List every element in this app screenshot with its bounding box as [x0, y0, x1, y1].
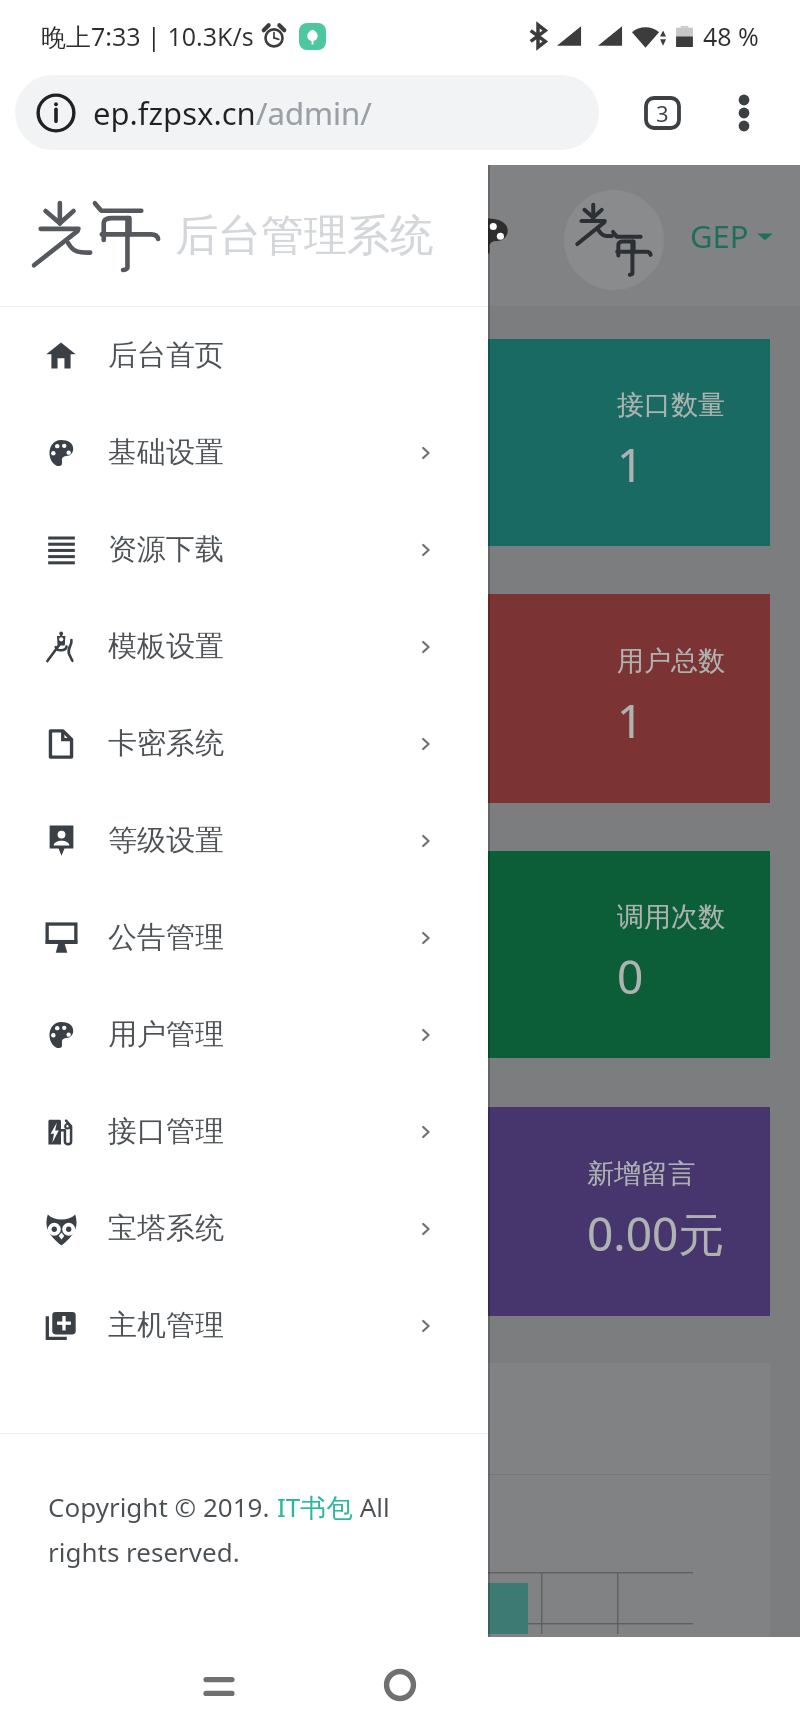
staticText: 卡密系统: [108, 725, 224, 762]
staticText: 调用次数: [617, 900, 725, 934]
button[interactable]: ep.fzpsx.cn: [15, 75, 599, 150]
staticText: 资源下载: [108, 531, 224, 568]
staticText: GEP: [690, 215, 749, 257]
staticText: 48 %: [703, 19, 759, 53]
staticText: 用户管理: [108, 1016, 224, 1053]
button[interactable]: 资源下载: [0, 501, 488, 598]
staticText: 公告管理: [108, 919, 224, 956]
button[interactable]: More options: [716, 85, 772, 141]
staticText: 新增留言: [587, 1157, 695, 1191]
button[interactable]: 宝塔系统: [0, 1180, 488, 1277]
button[interactable]: 接口数量: [18, 339, 770, 546]
button[interactable]: 用户总数: [18, 594, 770, 803]
staticText: ep.fzpsx.cn: [93, 92, 256, 134]
staticText: 后台管理系统: [175, 209, 433, 263]
staticText: 用户总数: [617, 644, 725, 678]
staticText: 接口数量: [617, 388, 725, 422]
button[interactable]: Tabs: [634, 85, 690, 141]
staticText: 接口管理: [108, 1113, 224, 1150]
staticText: 模板设置: [108, 628, 224, 665]
button[interactable]: Theme: [466, 214, 510, 258]
staticText: All: [353, 1489, 390, 1524]
staticText: rights reserved.: [48, 1534, 240, 1569]
staticText: 1: [617, 689, 644, 752]
staticText: 0.00元: [587, 1202, 725, 1265]
button[interactable]: 等级设置: [0, 792, 488, 889]
staticText: /admin/: [256, 92, 372, 134]
staticText: 后台首页: [108, 337, 224, 374]
staticText: 1: [617, 433, 644, 496]
button[interactable]: Recent apps: [186, 1652, 252, 1718]
button[interactable]: 调用次数: [18, 851, 770, 1058]
button[interactable]: 模板设置: [0, 598, 488, 695]
button[interactable]: 公告管理: [0, 889, 488, 986]
staticText: 等级设置: [108, 822, 224, 859]
staticText: 宝塔系统: [108, 1210, 224, 1247]
button[interactable]: GEP: [682, 205, 781, 267]
staticText: 基础设置: [108, 434, 224, 471]
staticText: 0: [617, 945, 644, 1008]
staticText: 晚上7:33 | 10.3K/s: [41, 19, 254, 53]
staticText: IT书包: [277, 1489, 353, 1525]
button[interactable]: 主机管理: [0, 1277, 488, 1374]
staticText: 主机管理: [108, 1307, 224, 1344]
button[interactable]: 新增留言: [18, 1107, 770, 1316]
staticText: Copyright © 2019.: [48, 1489, 277, 1524]
button[interactable]: 基础设置: [0, 404, 488, 501]
button[interactable]: 用户管理: [0, 986, 488, 1083]
button[interactable]: 卡密系统: [0, 695, 488, 792]
button[interactable]: Home: [367, 1652, 433, 1718]
staticText: 3: [656, 98, 669, 128]
button[interactable]: 接口管理: [0, 1083, 488, 1180]
button[interactable]: 后台首页: [0, 307, 488, 404]
